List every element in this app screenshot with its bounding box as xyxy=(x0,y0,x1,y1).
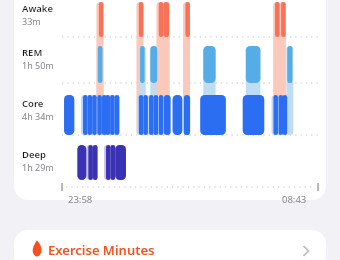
button[interactable] xyxy=(14,0,326,200)
button[interactable]: Exercise Minutes xyxy=(14,230,326,260)
